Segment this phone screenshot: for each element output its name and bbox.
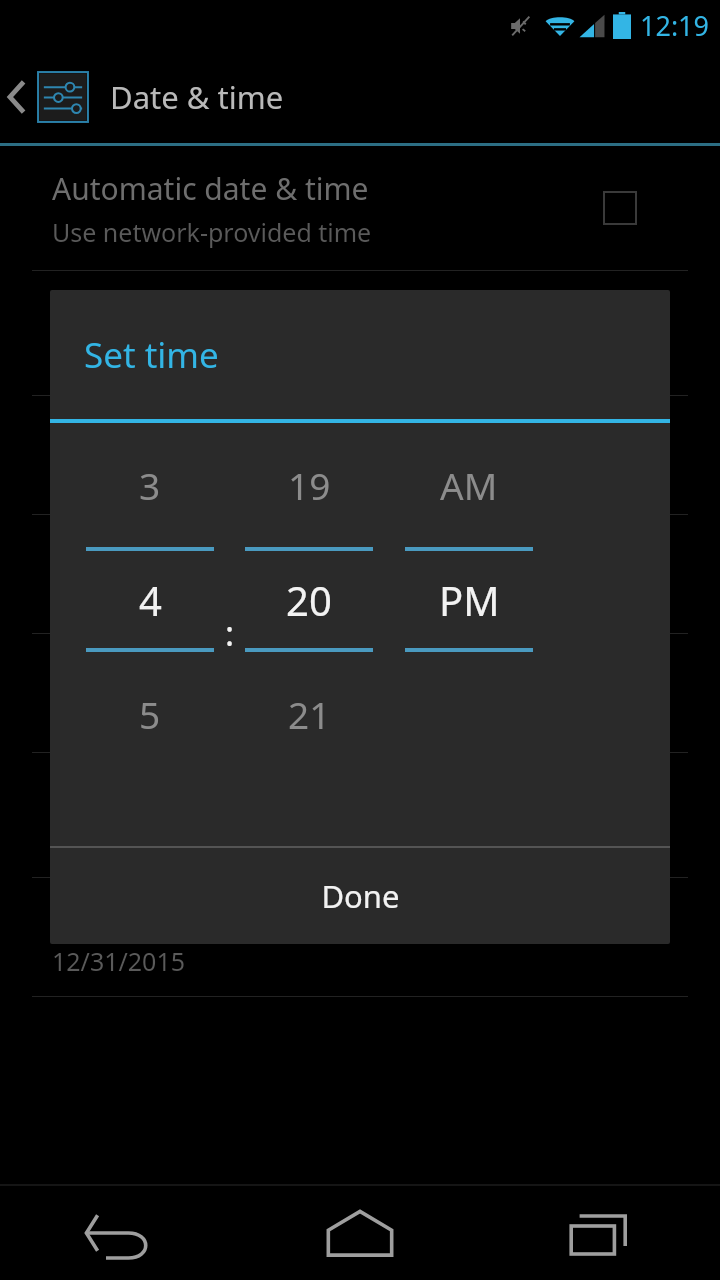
button[interactable]: Set time bbox=[0, 515, 720, 634]
staticText: Automatic date & time bbox=[52, 168, 369, 209]
staticText: 3 bbox=[139, 460, 161, 510]
staticText: December 31, 2015 bbox=[52, 462, 280, 496]
button[interactable]: Home bbox=[240, 1186, 480, 1280]
staticText: Use network-provided time bbox=[52, 215, 372, 249]
button[interactable]: AM PM bbox=[405, 423, 533, 843]
staticText: 4 bbox=[139, 573, 162, 627]
staticText: 5 bbox=[139, 689, 161, 739]
staticText: 21 bbox=[288, 689, 331, 739]
staticText: AM bbox=[440, 460, 498, 510]
staticText: 20 bbox=[286, 573, 332, 627]
staticText: 19 bbox=[288, 460, 331, 510]
staticText: GMT+00:00 bbox=[52, 700, 185, 734]
staticText: Done bbox=[321, 875, 400, 917]
button[interactable]: Set date bbox=[0, 396, 720, 515]
button[interactable]: Back bbox=[0, 1186, 240, 1280]
button[interactable]: Automatic date & time bbox=[0, 146, 720, 271]
staticText: 12:19 bbox=[640, 7, 710, 44]
button[interactable]: Select time zone bbox=[0, 634, 720, 753]
staticText: 4:20 PM bbox=[52, 581, 146, 615]
staticText: Set time bbox=[84, 331, 219, 379]
button[interactable]: Back bbox=[0, 50, 720, 143]
staticText: Use network-provided time zone bbox=[52, 340, 435, 374]
staticText: Set time bbox=[52, 534, 168, 575]
button[interactable]: Use 24-hour format bbox=[0, 753, 720, 878]
staticText: : bbox=[225, 610, 235, 656]
staticText: Date & time bbox=[110, 76, 284, 118]
button[interactable]: Recent apps bbox=[480, 1186, 720, 1280]
button[interactable]: Automatic time zone bbox=[0, 271, 720, 396]
button[interactable]: Hour bbox=[86, 423, 214, 843]
button[interactable]: Minute bbox=[245, 423, 373, 843]
staticText: Set date bbox=[52, 415, 168, 456]
staticText: 1:00 PM bbox=[52, 822, 146, 856]
other: Back bbox=[6, 77, 28, 117]
staticText: 12/31/2015 bbox=[52, 944, 186, 978]
staticText: PM bbox=[439, 573, 500, 627]
button[interactable]: Choose date format bbox=[0, 878, 720, 997]
staticText: Choose date format bbox=[52, 897, 333, 938]
button[interactable]: Done bbox=[50, 848, 670, 944]
